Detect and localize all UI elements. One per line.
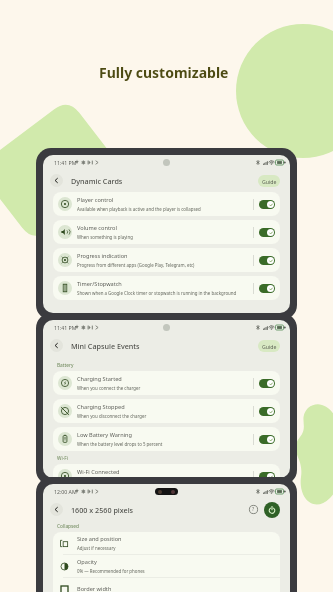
button[interactable]: Guide <box>258 340 280 352</box>
button[interactable]: Toggle <box>259 435 275 444</box>
button[interactable]: Back <box>50 174 63 187</box>
button[interactable]: Timer/Stopwatch <box>53 276 280 300</box>
staticText: Battery <box>57 362 74 369</box>
button[interactable]: Size and position <box>53 532 280 554</box>
button[interactable]: Progress indication <box>53 248 280 272</box>
button[interactable]: Toggle <box>259 256 275 265</box>
staticText: Progress indication <box>77 252 128 260</box>
staticText: Wi-Fi <box>57 455 68 462</box>
staticText: Mini Capsule Events <box>71 341 140 351</box>
staticText: Dynamic Cards <box>71 176 123 186</box>
staticText: Volume control <box>77 224 117 232</box>
staticText: When you disconnect the charger <box>77 413 147 419</box>
staticText: Adjust if necessary <box>77 545 116 551</box>
button[interactable]: Power <box>264 502 280 518</box>
staticText: 11:41 PM <box>54 159 77 166</box>
staticText: Size and position <box>77 535 122 543</box>
staticText: 1600 x 2560 pixels <box>71 505 134 515</box>
button[interactable]: Help <box>247 503 260 516</box>
staticText: 12:00 AM <box>54 488 77 495</box>
staticText: Guide <box>262 343 277 350</box>
staticText: Fully customizable <box>99 63 229 82</box>
staticText: Low Battery Warning <box>77 431 132 439</box>
staticText: Charging Started <box>77 375 122 383</box>
button[interactable]: Toggle <box>259 379 275 388</box>
button[interactable]: Border width <box>53 578 280 592</box>
button[interactable]: Toggle <box>259 472 275 478</box>
button[interactable]: Charging Started <box>53 371 280 395</box>
staticText: Border width <box>77 585 112 592</box>
button[interactable]: Toggle <box>259 284 275 293</box>
button[interactable]: Toggle <box>259 407 275 416</box>
staticText: Player control <box>77 196 114 204</box>
button[interactable]: Wi-Fi Connected <box>53 464 280 478</box>
staticText: When you connect the charger <box>77 385 141 391</box>
staticText: ? <box>252 506 255 513</box>
button[interactable]: Charging Stopped <box>53 399 280 423</box>
staticText: When the battery level drops to 5 percen… <box>77 441 163 447</box>
button[interactable]: Guide <box>258 175 280 187</box>
button[interactable]: Opacity <box>53 555 280 577</box>
button[interactable]: Toggle <box>259 200 275 209</box>
button[interactable]: Back <box>50 339 63 352</box>
button[interactable]: Player control <box>53 192 280 216</box>
staticText: Opacity <box>77 558 97 566</box>
staticText: Charging Stopped <box>77 403 125 411</box>
button[interactable]: Volume control <box>53 220 280 244</box>
button[interactable]: Toggle <box>259 228 275 237</box>
button[interactable]: Low Battery Warning <box>53 427 280 451</box>
staticText: Shown when a Google Clock timer or stopw… <box>77 290 237 296</box>
staticText: Available when playback is active and th… <box>77 206 201 212</box>
button[interactable]: Back <box>50 503 63 516</box>
staticText: 11:41 PM <box>54 324 77 331</box>
staticText: Timer/Stopwatch <box>77 280 122 288</box>
staticText: 0% — Recommended for phones <box>77 568 145 574</box>
staticText: Progress from different apps (Google Pla… <box>77 262 195 268</box>
staticText: Guide <box>262 178 277 185</box>
staticText: When something is playing <box>77 234 133 240</box>
staticText: Wi-Fi Connected <box>77 468 120 476</box>
staticText: Collapsed <box>57 523 80 530</box>
